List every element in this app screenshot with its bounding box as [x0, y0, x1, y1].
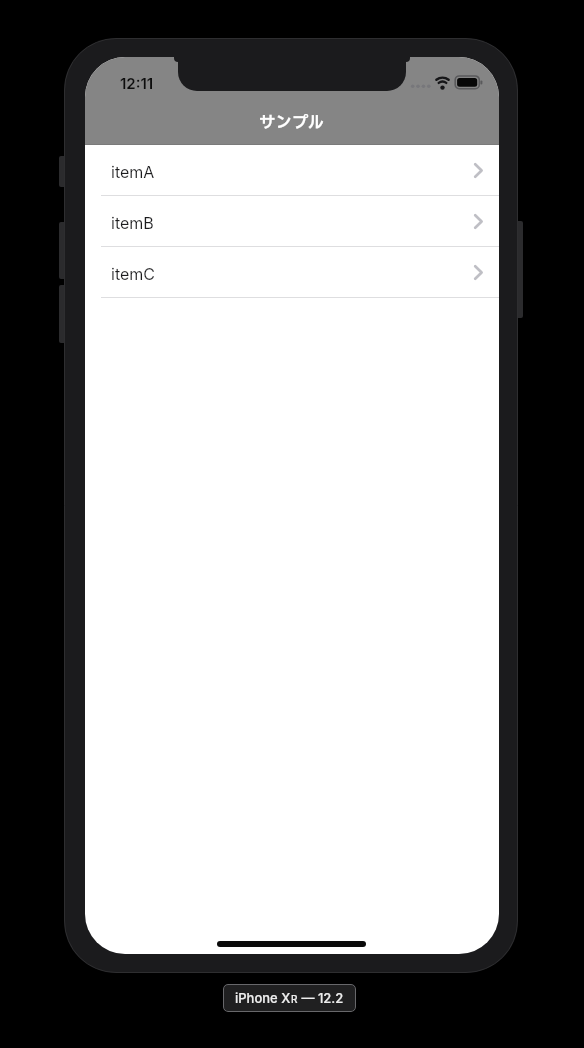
staticText: サンプル — [259, 111, 325, 136]
staticText: itemB — [111, 213, 154, 232]
button[interactable]: itemA — [85, 145, 499, 196]
button[interactable]: itemB — [85, 196, 499, 247]
button[interactable]: itemC — [85, 247, 499, 298]
staticText: 12:11 — [120, 74, 154, 92]
staticText: R — [291, 993, 298, 1005]
staticText: itemC — [111, 264, 155, 283]
staticText: itemA — [111, 162, 155, 181]
staticText: iPhone X — [235, 990, 291, 1006]
staticText: — 12.2 — [298, 990, 344, 1006]
